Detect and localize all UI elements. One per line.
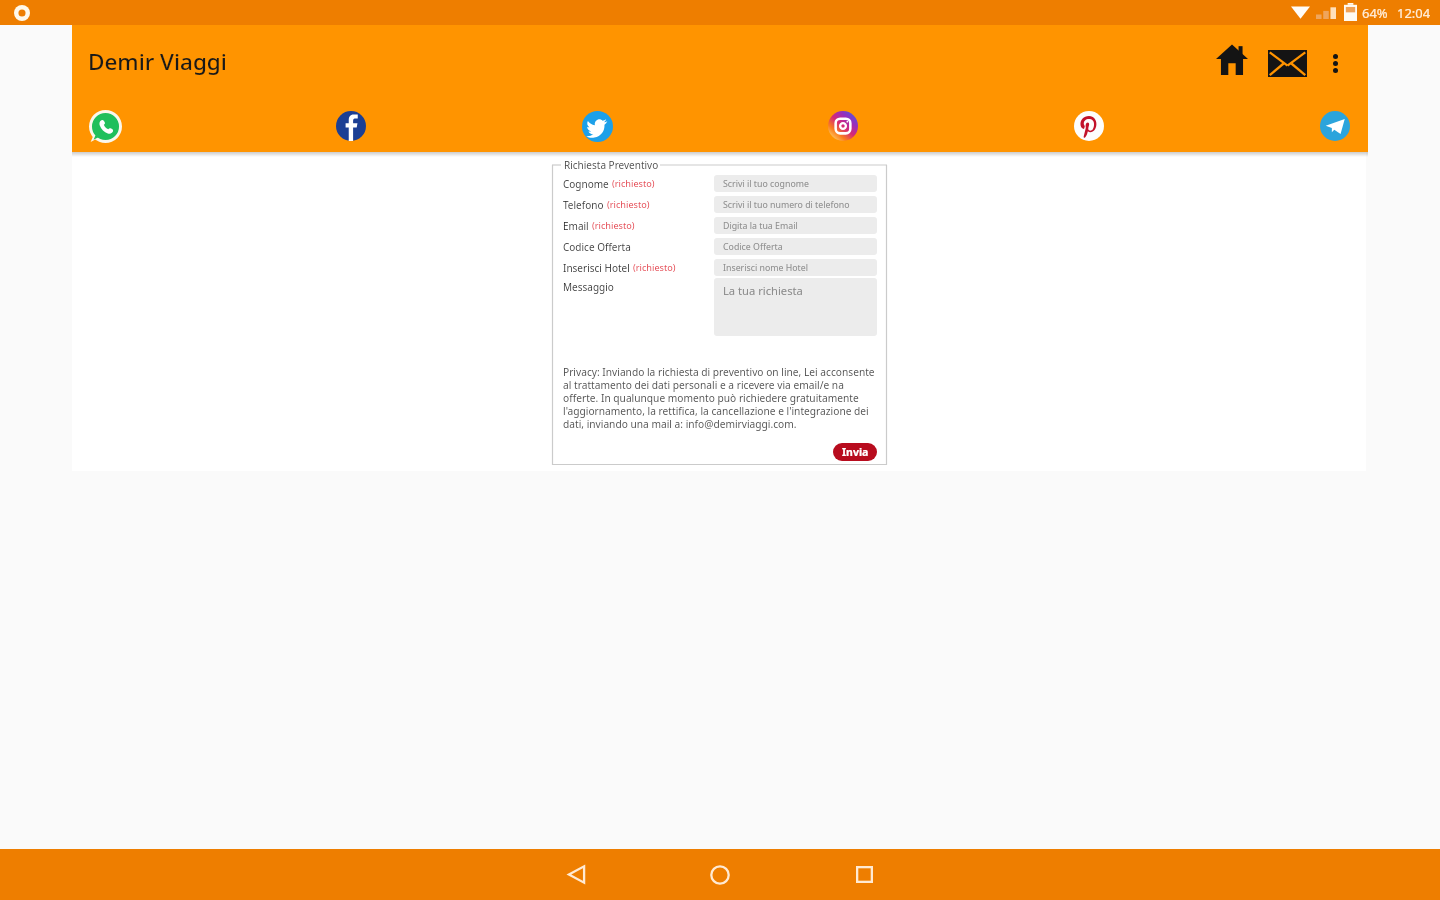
staticText: Codice Offerta [723, 241, 783, 253]
staticText: 64% [1362, 4, 1388, 22]
button[interactable]: Home [648, 849, 792, 900]
staticText: (richiesto) [612, 177, 655, 190]
button[interactable]: Facebook [329, 104, 373, 148]
button[interactable]: Scrivi il tuo numero di telefono [714, 196, 877, 213]
staticText: (richiesto) [633, 261, 676, 274]
button[interactable]: Digita la tua Email [714, 217, 877, 234]
button[interactable]: Pinterest [1067, 104, 1111, 148]
staticText: Inserisci Hotel [563, 261, 630, 275]
staticText: Demir Viaggi [88, 46, 227, 77]
staticText: Richiesta Preventivo [564, 158, 659, 172]
staticText: Email [563, 219, 589, 233]
staticText: Scrivi il tuo numero di telefono [723, 199, 850, 211]
staticText: Codice Offerta [563, 240, 631, 254]
button[interactable]: Back [504, 849, 648, 900]
button[interactable]: Recent apps [792, 849, 936, 900]
button[interactable]: Telegram [1313, 104, 1357, 148]
staticText: Cognome [563, 177, 609, 191]
staticText: Invia [842, 445, 869, 459]
button[interactable]: Invia [833, 443, 877, 461]
staticText: Inserisci nome Hotel [723, 262, 808, 274]
staticText: (richiesto) [607, 198, 650, 211]
staticText: Telefono [563, 198, 604, 212]
button[interactable]: WhatsApp [83, 104, 127, 148]
staticText: Digita la tua Email [723, 220, 798, 232]
button[interactable]: Inserisci nome Hotel [714, 259, 877, 276]
button[interactable]: More options [1313, 41, 1357, 85]
button[interactable]: Codice Offerta [714, 238, 877, 255]
staticText: Messaggio [563, 280, 614, 294]
staticText: Scrivi il tuo cognome [723, 178, 809, 190]
button[interactable]: Scrivi il tuo cognome [714, 175, 877, 192]
staticText: 12:04 [1397, 4, 1431, 22]
button[interactable]: Email [1261, 37, 1313, 89]
staticText: (richiesto) [592, 219, 635, 232]
button[interactable]: La tua richiesta [714, 278, 877, 336]
staticText: La tua richiesta [723, 283, 803, 298]
button[interactable]: Twitter [575, 104, 619, 148]
button[interactable]: Instagram [821, 104, 865, 148]
staticText: Privacy: Inviando la richiesta di preven… [563, 365, 883, 431]
button[interactable]: Home [1206, 33, 1258, 85]
